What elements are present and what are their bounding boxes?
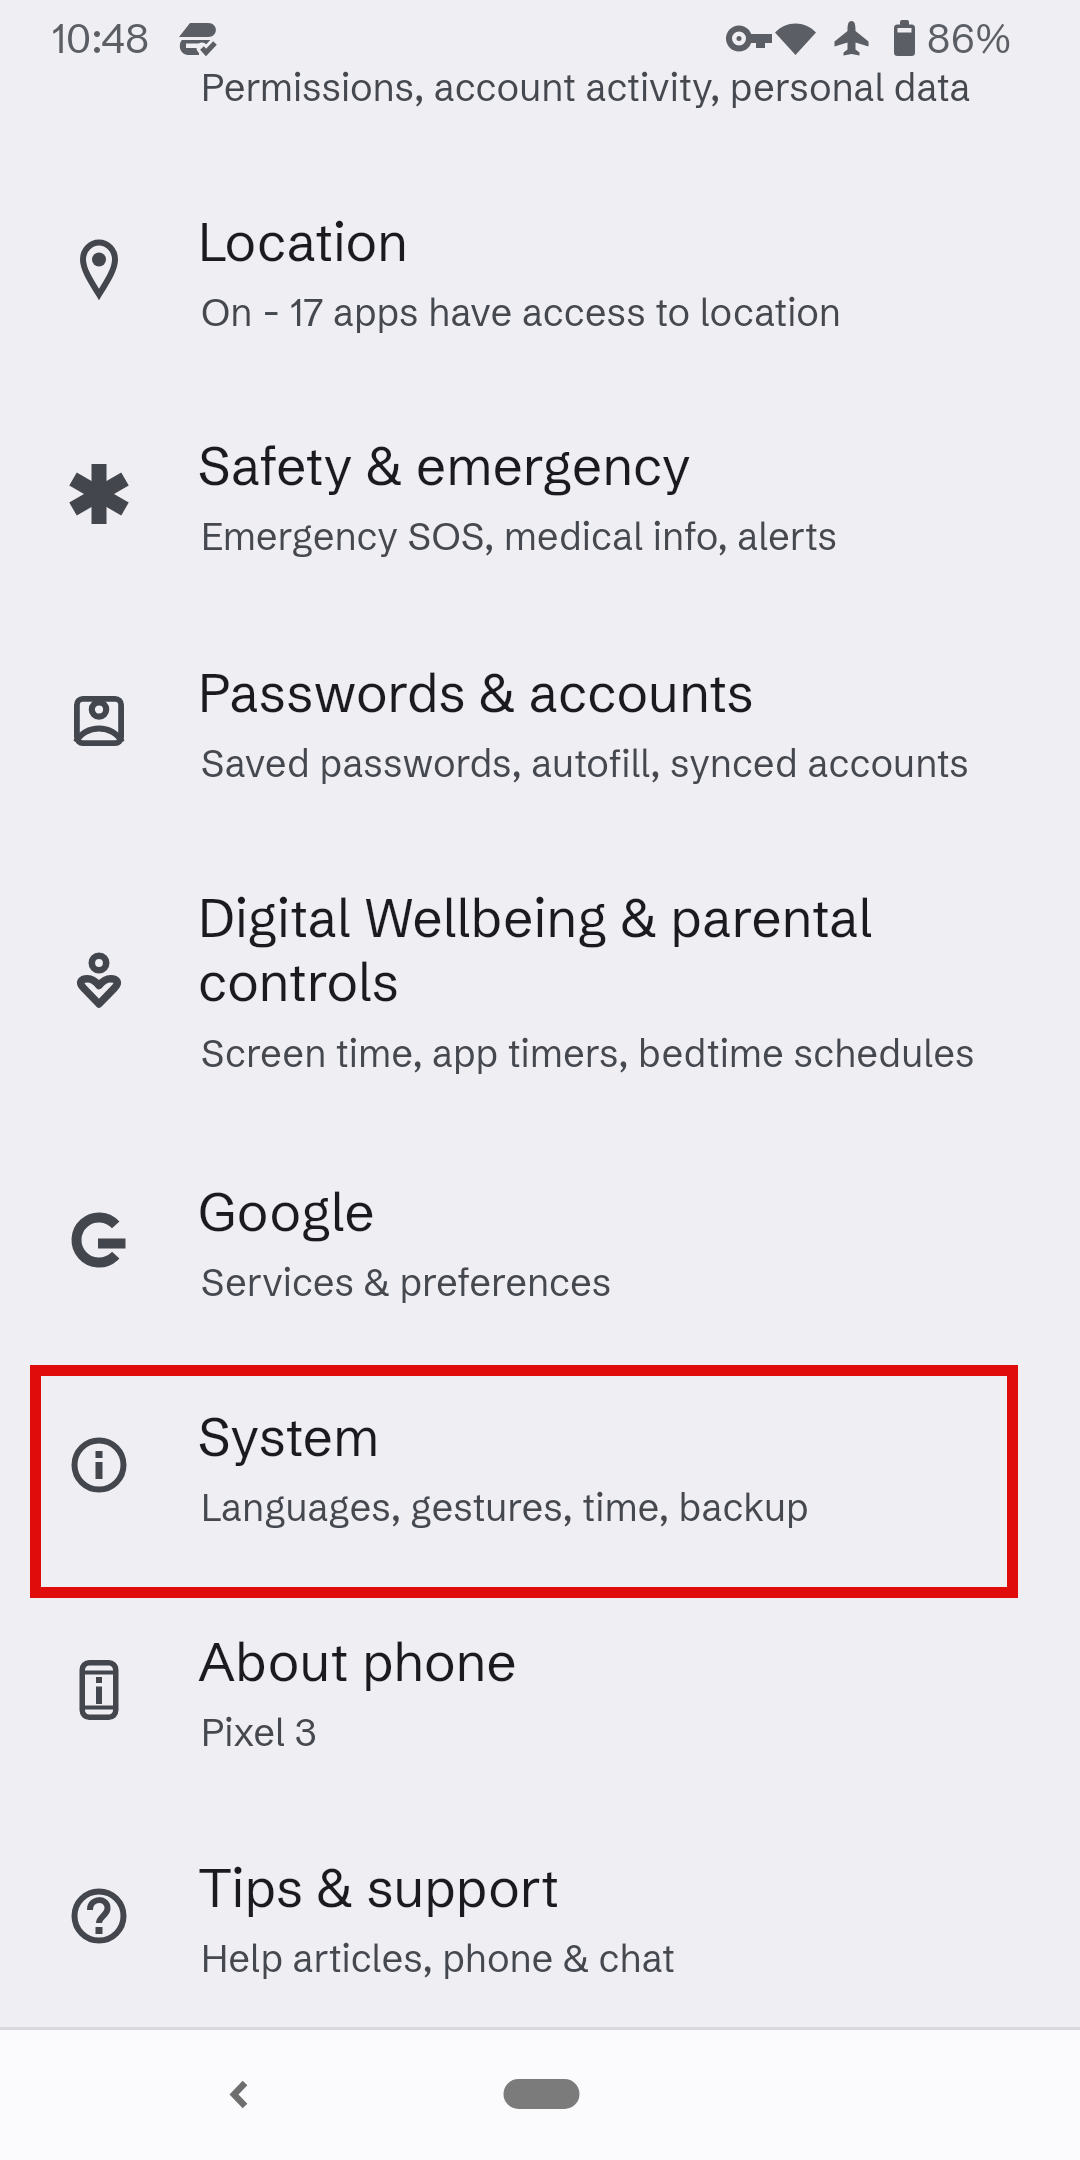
staticText: Tips & support bbox=[198, 1855, 938, 1920]
staticText: Services & preferences bbox=[201, 1259, 612, 1306]
button[interactable]: Tips & support bbox=[0, 1816, 1080, 2041]
staticText: Permissions, account activity, personal … bbox=[201, 64, 971, 111]
button[interactable]: Location bbox=[0, 170, 1080, 395]
staticText: About phone bbox=[198, 1629, 938, 1694]
button[interactable]: Back bbox=[170, 2041, 310, 2146]
staticText: Emergency SOS, medical info, alerts bbox=[201, 513, 838, 560]
button[interactable]: System bbox=[0, 1365, 1080, 1590]
staticText: Safety & emergency bbox=[198, 433, 938, 498]
staticText: System bbox=[198, 1404, 938, 1469]
staticText: Passwords & accounts bbox=[198, 660, 938, 725]
button[interactable]: Google bbox=[0, 1140, 1080, 1365]
staticText: Help articles, phone & chat bbox=[201, 1935, 675, 1982]
button[interactable]: Permissions, account activity, personal … bbox=[0, 62, 1080, 122]
button[interactable]: About phone bbox=[0, 1590, 1080, 1815]
button[interactable]: Safety & emergency bbox=[0, 394, 1080, 619]
staticText: Digital Wellbeing & parental controls bbox=[198, 885, 938, 1015]
staticText: 86% bbox=[927, 14, 1011, 63]
staticText: 10:48 bbox=[52, 13, 150, 64]
staticText: Saved passwords, autofill, synced accoun… bbox=[201, 740, 969, 787]
staticText: Screen time, app timers, bedtime schedul… bbox=[201, 1030, 975, 1077]
staticText: Languages, gestures, time, backup bbox=[201, 1484, 809, 1531]
staticText: Pixel 3 bbox=[201, 1709, 317, 1756]
staticText: On - 17 apps have access to location bbox=[201, 289, 841, 336]
button[interactable]: Digital Wellbeing & parental controls bbox=[0, 846, 1080, 1141]
button[interactable]: Passwords & accounts bbox=[0, 621, 1080, 846]
button[interactable]: Home bbox=[472, 2049, 609, 2139]
staticText: Location bbox=[198, 209, 938, 274]
staticText: Google bbox=[198, 1179, 938, 1244]
